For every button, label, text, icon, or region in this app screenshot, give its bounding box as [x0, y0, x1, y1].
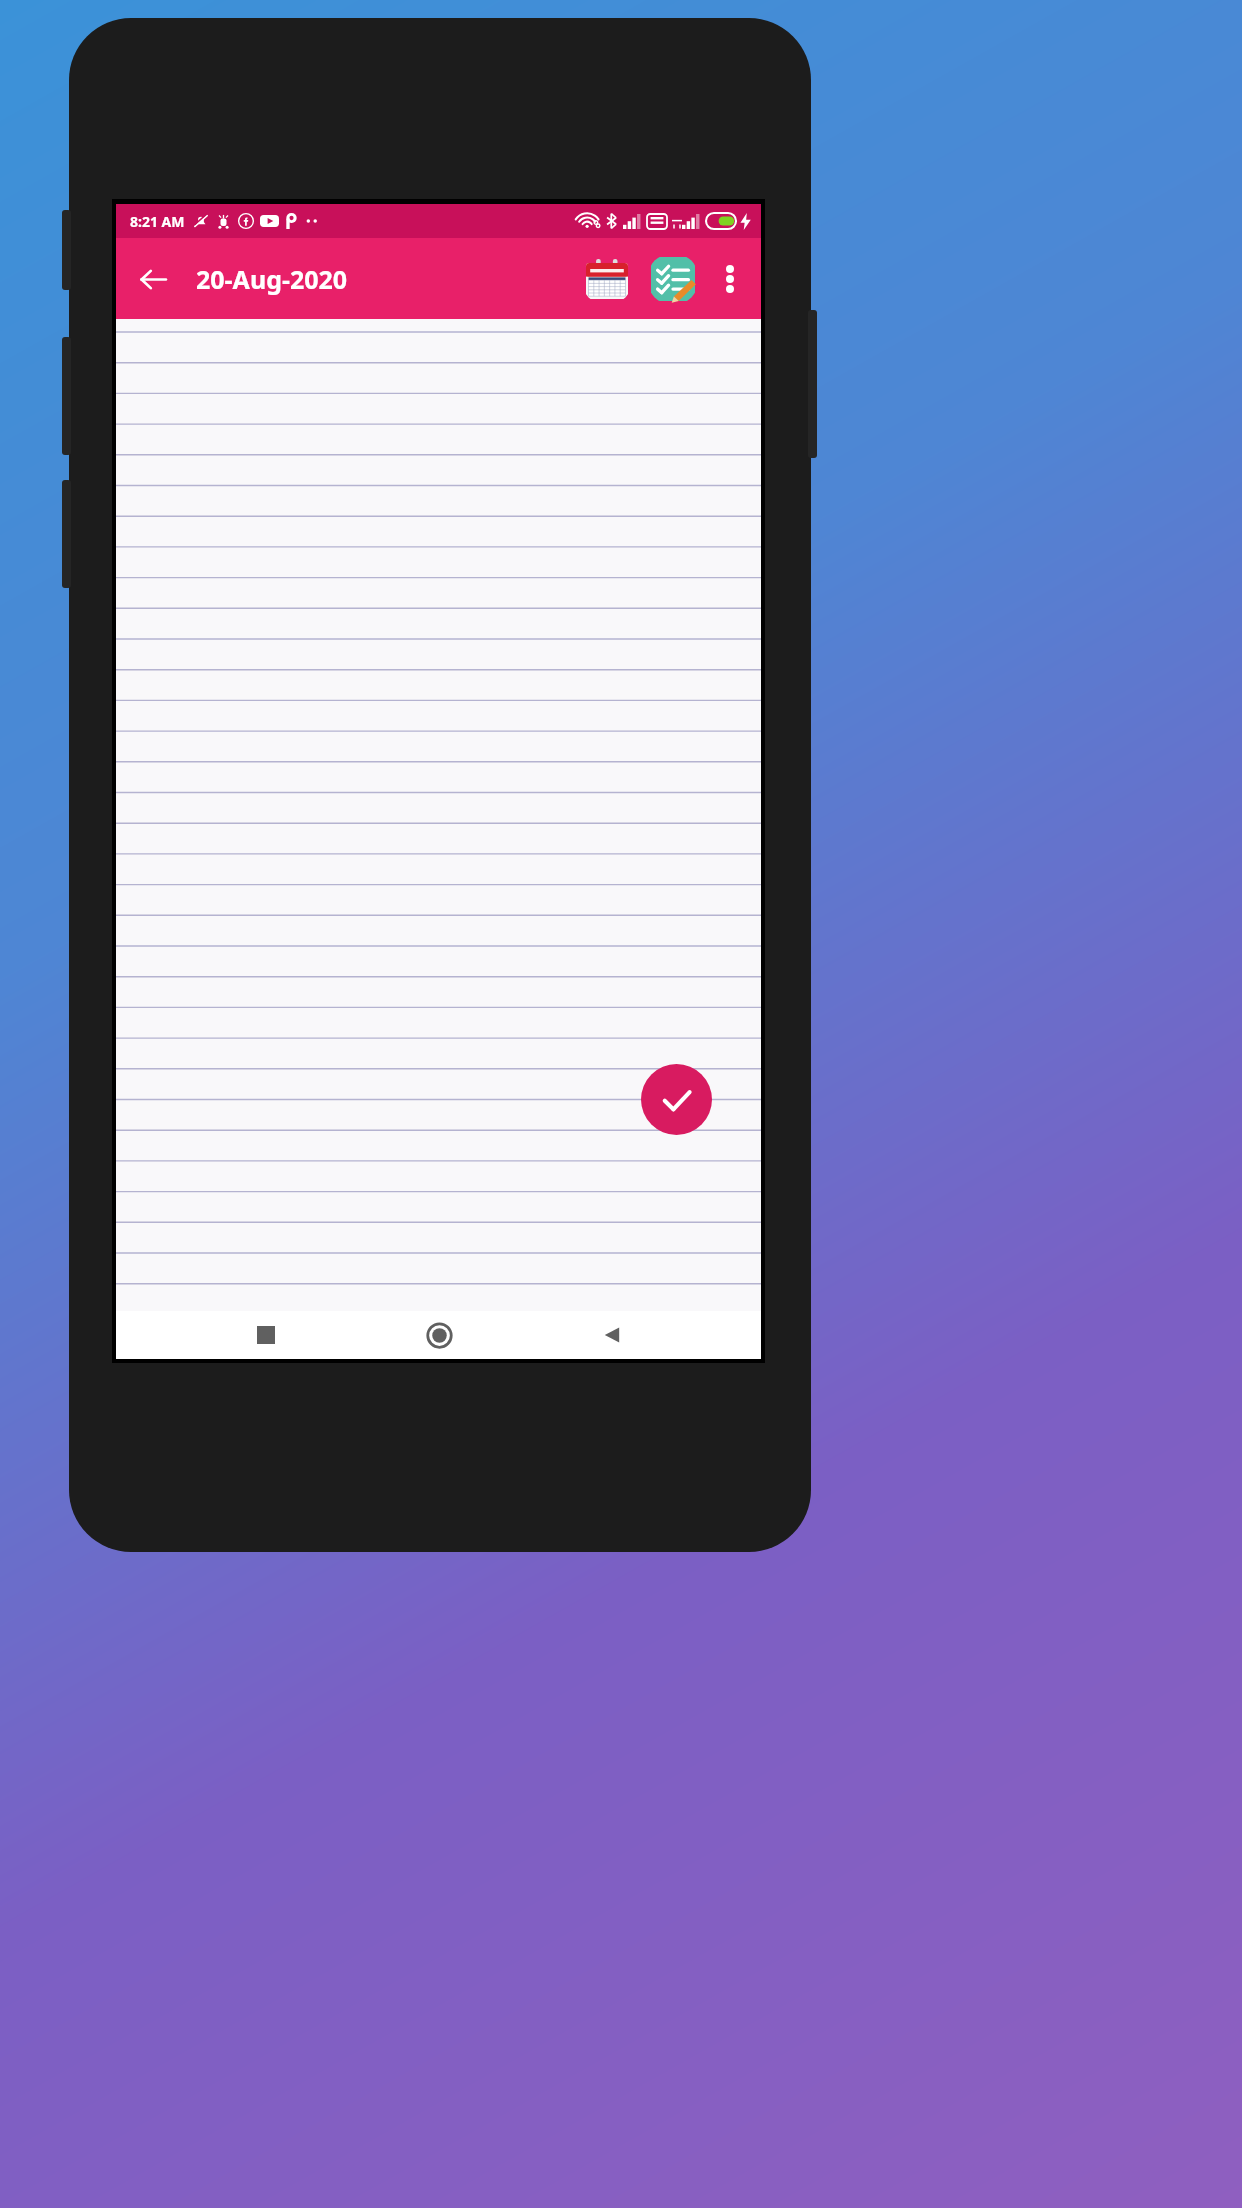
- button[interactable]: Back: [582, 1311, 642, 1359]
- button[interactable]: Calendar: [581, 253, 633, 305]
- button[interactable]: Checklist: [647, 253, 699, 305]
- button[interactable]: Home: [409, 1311, 469, 1359]
- staticText: 8:21 AM: [130, 212, 185, 231]
- button[interactable]: Back: [130, 256, 176, 302]
- button[interactable]: More options: [707, 256, 753, 302]
- staticText: 20-Aug-2020: [196, 262, 348, 296]
- button[interactable]: Recents: [236, 1311, 296, 1359]
- button[interactable]: Save: [641, 1064, 712, 1135]
